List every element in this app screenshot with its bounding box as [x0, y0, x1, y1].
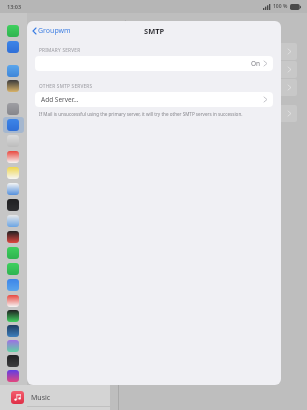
button[interactable]: Music: [0, 385, 110, 410]
staticText: Settings: [57, 19, 85, 29]
staticText: OTHER SMTP SERVERS: [39, 83, 93, 89]
staticText: Music: [31, 393, 51, 403]
staticText: 100 %: [273, 3, 288, 10]
staticText: PRIMARY SERVER: [39, 47, 81, 53]
button[interactable]: Groupwm: [31, 23, 73, 39]
staticText: Mail: [127, 19, 141, 29]
button[interactable]: Mail: [122, 19, 141, 29]
button[interactable]: Primary server, On: [35, 56, 273, 71]
staticText: Add Server...: [41, 95, 79, 104]
button[interactable]: Add Server...: [35, 92, 273, 107]
staticText: Groupwm: [38, 26, 71, 36]
staticText: Accounts: [199, 19, 231, 29]
staticText: If Mail is unsuccessful using the primar…: [39, 111, 243, 117]
staticText: On: [251, 59, 261, 68]
staticText: 13:03: [7, 3, 22, 10]
staticText: SMTP: [144, 26, 165, 36]
